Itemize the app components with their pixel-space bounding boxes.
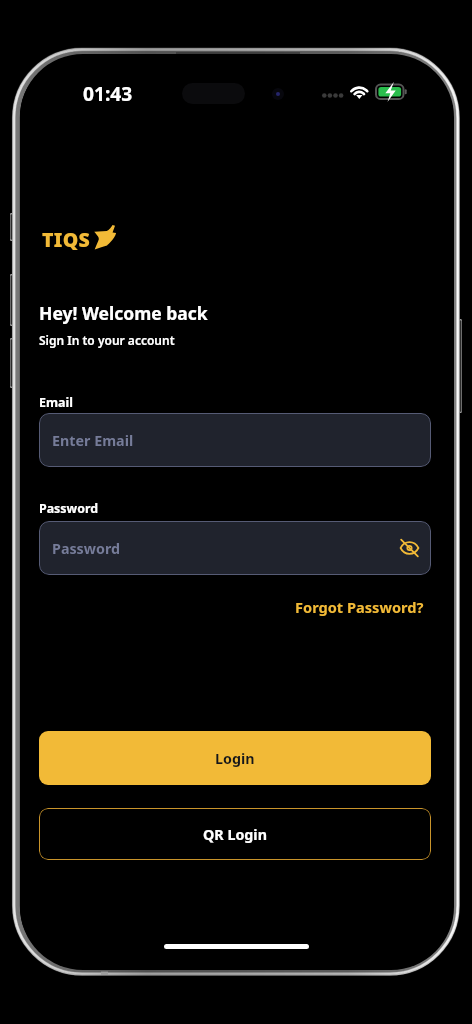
staticText: Password: [39, 500, 99, 517]
button[interactable]: Forgot Password?: [264, 594, 424, 620]
staticText: Hey! Welcome back: [39, 301, 208, 325]
button[interactable]: Password: [39, 521, 431, 575]
button[interactable]: Enter Email: [39, 413, 431, 467]
staticText: Login: [215, 749, 255, 768]
staticText: Sign In to your account: [39, 332, 175, 348]
staticText: Enter Email: [52, 431, 134, 450]
button[interactable]: Show password: [394, 533, 424, 563]
staticText: 01:43: [83, 80, 133, 106]
staticText: Email: [39, 394, 73, 411]
button[interactable]: Login: [39, 731, 431, 785]
staticText: Forgot Password?: [295, 597, 424, 617]
staticText: Password: [52, 539, 121, 558]
button[interactable]: QR Login: [39, 808, 431, 860]
staticText: QR Login: [203, 825, 267, 844]
staticText: TIQS: [42, 226, 91, 253]
